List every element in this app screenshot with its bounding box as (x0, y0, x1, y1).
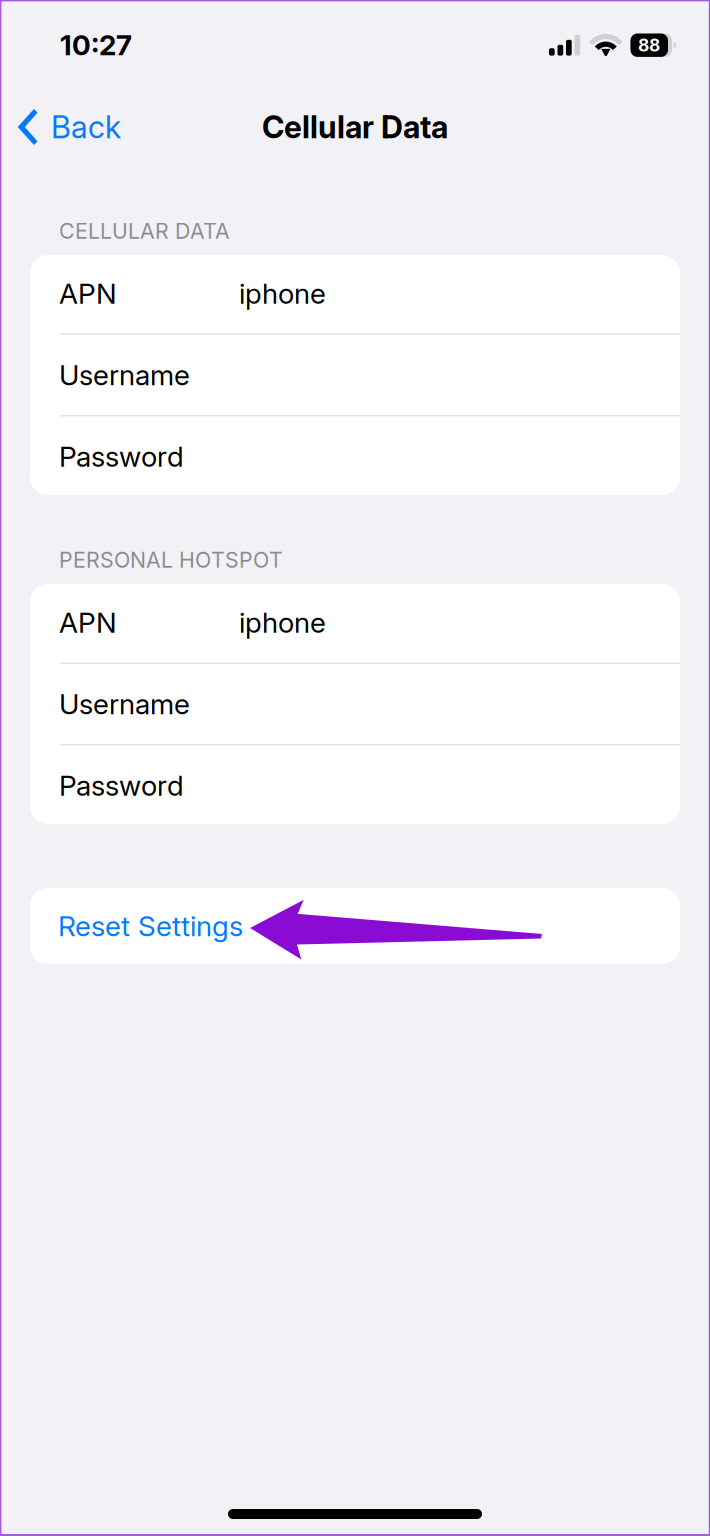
staticText: Cellular Data (262, 108, 448, 145)
button[interactable]: APN (30, 582, 680, 662)
staticText: Username (59, 358, 190, 392)
staticText: Password (59, 769, 184, 802)
staticText: iphone (239, 606, 326, 639)
staticText: iphone (239, 277, 326, 310)
button[interactable]: Username (30, 664, 680, 744)
staticText: CELLULAR DATA (59, 218, 230, 244)
button[interactable]: APN (30, 253, 680, 333)
staticText: Reset Settings (58, 909, 243, 943)
staticText: Back (51, 108, 121, 145)
button[interactable]: Password (30, 416, 680, 496)
staticText: APN (59, 277, 117, 310)
staticText: PERSONAL HOTSPOT (59, 547, 283, 573)
button[interactable]: Password (30, 745, 680, 825)
staticText: Username (59, 687, 190, 721)
staticText: 88 (638, 35, 660, 56)
staticText: Password (59, 440, 184, 473)
button[interactable]: Back (0, 105, 135, 149)
staticText: APN (59, 606, 117, 639)
button[interactable]: Username (30, 335, 680, 415)
staticText: 10:27 (60, 28, 132, 62)
button[interactable]: Reset Settings (30, 888, 680, 964)
